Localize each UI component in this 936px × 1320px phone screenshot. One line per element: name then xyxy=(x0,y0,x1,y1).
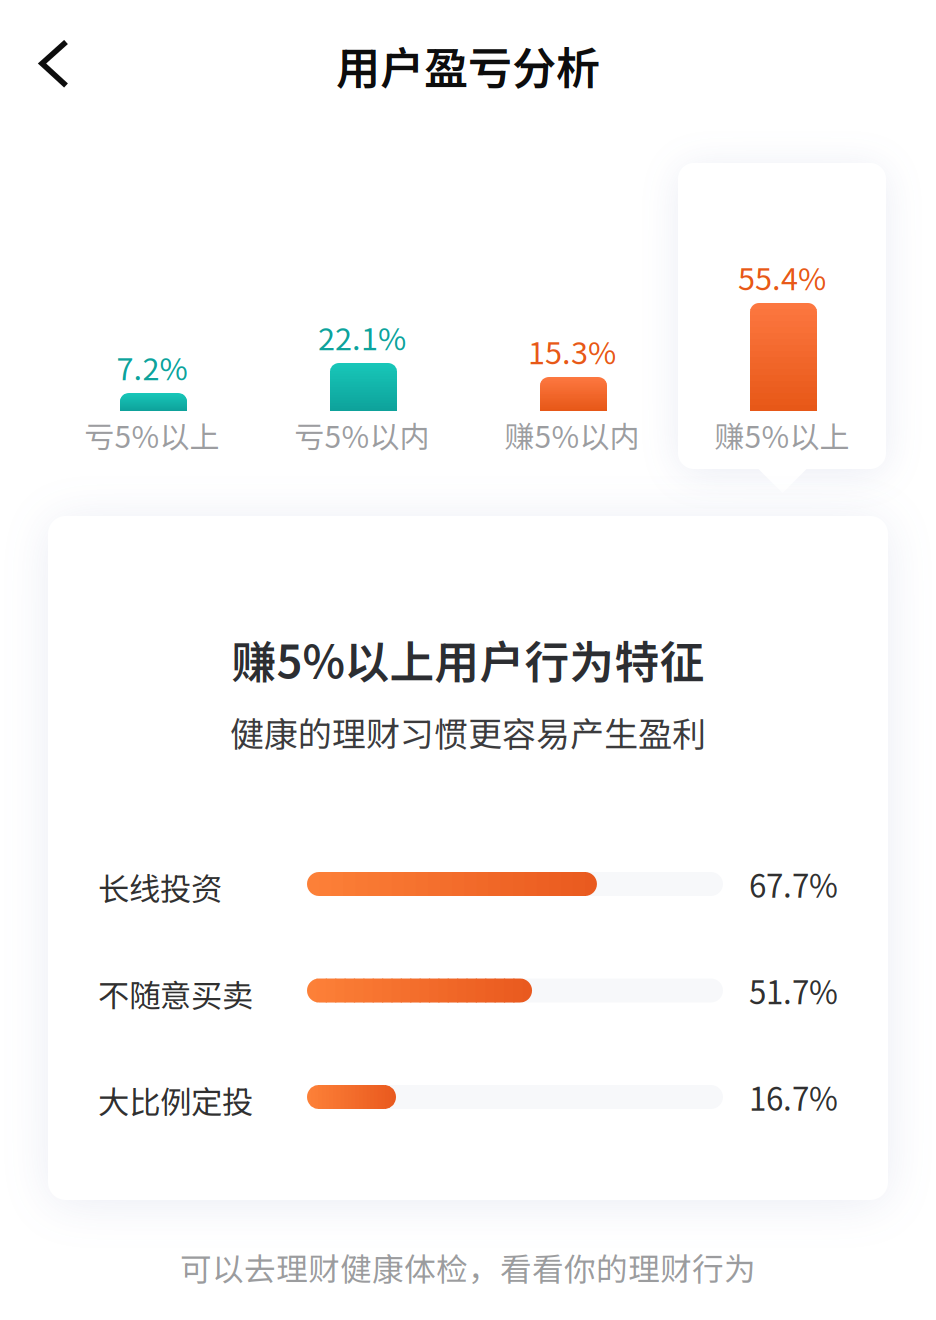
staticText: 55.4% xyxy=(738,255,826,299)
staticText: 67.7% xyxy=(749,861,838,907)
staticText: 亏5%以内 xyxy=(294,413,429,457)
staticText: 16.7% xyxy=(749,1074,838,1120)
button[interactable]: 可以去理财健康体检，看看你的理财行为 xyxy=(0,1241,936,1293)
staticText: 健康的理财习惯更容易产生盈利 xyxy=(230,707,706,757)
button[interactable]: 55.4% xyxy=(677,296,887,461)
staticText: 51.7% xyxy=(749,968,838,1013)
button[interactable]: 15.3% xyxy=(467,296,677,461)
staticText: 亏5%以上 xyxy=(84,413,219,457)
button[interactable]: 22.1% xyxy=(257,296,467,461)
staticText: 长线投资 xyxy=(98,864,222,910)
staticText: 大比例定投 xyxy=(98,1077,253,1123)
staticText: 不随意买卖 xyxy=(98,971,253,1016)
staticText: 22.1% xyxy=(318,315,406,359)
staticText: 15.3% xyxy=(528,329,616,373)
staticText: 用户盈亏分析 xyxy=(336,33,600,97)
button[interactable]: 返回 xyxy=(16,16,116,116)
staticText: 7.2% xyxy=(116,345,187,389)
staticText: 赚5%以内 xyxy=(504,413,639,457)
staticText: 赚5%以上用户行为特征 xyxy=(231,627,704,691)
staticText: 赚5%以上 xyxy=(714,413,849,457)
button[interactable]: 7.2% xyxy=(47,296,257,461)
staticText: 可以去理财健康体检，看看你的理财行为 xyxy=(180,1244,756,1290)
